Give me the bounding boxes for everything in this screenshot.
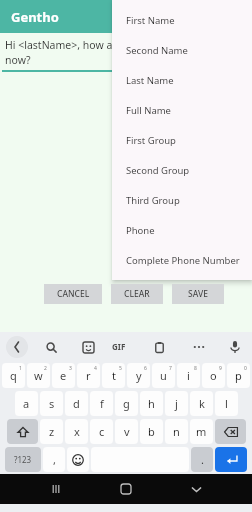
staticText: 7 — [169, 365, 172, 372]
staticText: x — [74, 424, 80, 439]
button[interactable]: Recents — [42, 475, 70, 503]
button[interactable]: CLEAR — [111, 284, 163, 304]
staticText: j — [175, 396, 178, 411]
button[interactable]: , — [43, 447, 65, 472]
button[interactable]: Last Name — [112, 65, 252, 95]
button[interactable]: m — [190, 419, 213, 444]
button[interactable]: r — [77, 363, 100, 388]
button[interactable]: Back — [182, 475, 210, 503]
staticText: Third Group — [126, 194, 180, 207]
staticText: o — [210, 368, 217, 383]
staticText: Hi <lastName>, how are you now? — [5, 38, 144, 67]
staticText: 1 — [19, 365, 22, 372]
staticText: Last Name — [126, 74, 174, 87]
button[interactable]: a — [15, 391, 38, 416]
button[interactable]: SAVE — [172, 284, 224, 304]
button[interactable]: f — [90, 391, 113, 416]
button[interactable]: i — [177, 363, 200, 388]
button[interactable]: l — [215, 391, 238, 416]
staticText: 5 — [119, 365, 122, 372]
button[interactable]: j — [165, 391, 188, 416]
staticText: Complete Phone Number — [126, 254, 240, 267]
button[interactable]: More options — [190, 338, 208, 356]
staticText: c — [99, 424, 105, 439]
staticText: w — [34, 368, 43, 383]
button[interactable]: q — [2, 363, 25, 388]
button[interactable]: Search — [42, 338, 60, 356]
staticText: d — [73, 396, 80, 411]
staticText: 6 — [144, 365, 147, 372]
staticText: e — [60, 368, 67, 383]
button[interactable]: Voice input — [226, 338, 244, 356]
button[interactable]: p — [227, 363, 250, 388]
staticText: Second Group — [126, 164, 190, 177]
button[interactable]: e — [52, 363, 75, 388]
button[interactable]: y — [127, 363, 150, 388]
staticText: 8 — [194, 365, 197, 372]
button[interactable]: Back — [6, 336, 28, 358]
button[interactable]: w — [27, 363, 50, 388]
staticText: k — [199, 396, 205, 411]
button[interactable]: t — [102, 363, 125, 388]
button[interactable]: CANCEL — [44, 284, 102, 304]
button[interactable]: Second Group — [112, 155, 252, 185]
button[interactable]: Backspace — [215, 419, 246, 444]
staticText: f — [100, 396, 104, 411]
staticText: Gentho — [11, 8, 59, 26]
button[interactable]: Shift — [7, 419, 38, 444]
button[interactable]: c — [90, 419, 113, 444]
button[interactable]: n — [165, 419, 188, 444]
staticText: 3 — [69, 365, 72, 372]
staticText: Phone — [126, 224, 155, 237]
staticText: First Group — [126, 134, 176, 147]
staticText: 4 — [94, 365, 97, 372]
button[interactable]: Complete Phone Number — [112, 245, 252, 275]
staticText: Second Name — [126, 44, 188, 57]
button[interactable]: k — [190, 391, 213, 416]
staticText: First Name — [126, 14, 175, 27]
button[interactable]: First Name — [112, 5, 252, 35]
button[interactable]: Phone — [112, 215, 252, 245]
button[interactable]: Stickers — [79, 338, 97, 356]
staticText: q — [10, 368, 17, 383]
button[interactable]: Home — [112, 475, 140, 503]
button[interactable]: First Group — [112, 125, 252, 155]
staticText: u — [160, 368, 167, 383]
button[interactable]: ?123 — [5, 447, 41, 472]
staticText: n — [173, 424, 180, 439]
staticText: z — [49, 424, 55, 439]
button[interactable]: x — [65, 419, 88, 444]
button[interactable]: Enter — [215, 447, 247, 472]
staticText: SAVE — [188, 288, 208, 300]
staticText: p — [235, 368, 242, 383]
button[interactable]: . — [191, 447, 213, 472]
button[interactable]: Second Name — [112, 35, 252, 65]
button[interactable]: h — [140, 391, 163, 416]
button[interactable]: Third Group — [112, 185, 252, 215]
staticText: y — [136, 368, 142, 383]
staticText: 9 — [219, 365, 222, 372]
staticText: i — [187, 368, 190, 383]
staticText: . — [201, 452, 204, 467]
button[interactable]: v — [115, 419, 138, 444]
button[interactable]: g — [115, 391, 138, 416]
button[interactable]: GIF — [112, 341, 126, 352]
button[interactable]: d — [65, 391, 88, 416]
button[interactable]: Full Name — [112, 95, 252, 125]
button[interactable]: u — [152, 363, 175, 388]
staticText: g — [123, 396, 130, 411]
staticText: b — [148, 424, 155, 439]
button[interactable]: Clipboard — [150, 338, 168, 356]
staticText: 0 — [244, 365, 247, 372]
staticText: CANCEL — [57, 288, 90, 300]
staticText: h — [148, 396, 155, 411]
staticText: l — [225, 396, 228, 411]
button[interactable]: b — [140, 419, 163, 444]
button[interactable]: z — [40, 419, 63, 444]
staticText: a — [23, 396, 30, 411]
button[interactable]: o — [202, 363, 225, 388]
button[interactable]: Emoji — [67, 447, 89, 472]
button[interactable]: s — [40, 391, 63, 416]
